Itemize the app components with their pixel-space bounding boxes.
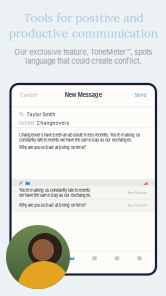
button[interactable]: Settings <box>128 251 151 265</box>
button[interactable]: Messages <box>61 251 83 265</box>
button[interactable]: Files <box>83 251 106 265</box>
staticText: Subject: <box>19 120 35 126</box>
staticText: To: <box>19 112 25 117</box>
staticText: Our exclusive feature, ToneMeter™, spots… <box>14 48 152 65</box>
button[interactable]: Why are you so bad at being on time? <box>10 200 156 211</box>
button[interactable]: Send <box>133 91 147 99</box>
staticText: Send <box>134 92 146 98</box>
staticText: You're making us constantly late to even… <box>19 188 91 198</box>
button[interactable]: Mailboxes <box>16 251 38 265</box>
staticText: New Message <box>65 92 102 98</box>
button[interactable]: Tools <box>106 251 128 265</box>
staticText: Tools for positive and productive commun… <box>8 10 157 41</box>
button[interactable]: You're making us constantly late to even… <box>10 186 156 199</box>
staticText: Why are you so bad at being on time? <box>19 145 86 150</box>
button[interactable]: Cancel <box>19 91 38 99</box>
button[interactable]: ToneMeter <box>143 181 147 185</box>
button[interactable]: Attach file <box>26 181 30 185</box>
staticText: See Solution <box>127 203 147 207</box>
button[interactable]: Calendar <box>38 251 61 265</box>
staticText: Changeovers <box>37 120 70 126</box>
button[interactable]: Markup <box>19 181 23 185</box>
staticText: Cancel <box>20 92 37 98</box>
staticText: Why are you so bad at being on time? <box>19 203 86 208</box>
staticText: Changeovers have been an absolute mess r… <box>19 132 140 142</box>
staticText: Taylor Smith <box>27 112 56 117</box>
staticText: See Solution <box>127 191 147 195</box>
